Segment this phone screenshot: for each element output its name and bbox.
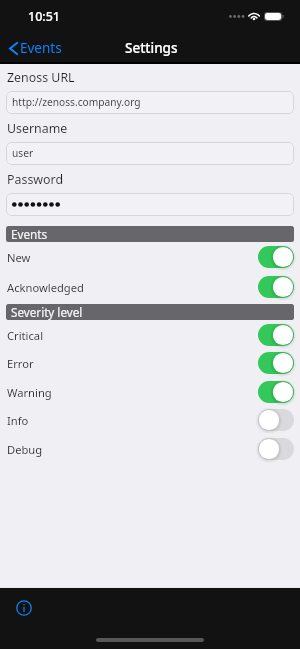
- button[interactable]: Events: [0, 34, 70, 62]
- staticText: Acknowledged: [7, 280, 84, 295]
- staticText: Warning: [7, 385, 52, 400]
- button[interactable]: [6, 193, 294, 216]
- staticText: Zenoss URL: [7, 69, 75, 86]
- staticText: Critical: [7, 328, 44, 343]
- button[interactable]: Debug: [0, 435, 300, 463]
- button[interactable]: Error: [0, 349, 300, 377]
- staticText: Settings: [125, 39, 178, 57]
- staticText: Error: [7, 356, 34, 371]
- button[interactable]: New: [0, 243, 300, 271]
- button[interactable]: Info: [16, 600, 32, 616]
- staticText: Severity level: [11, 304, 83, 320]
- button[interactable]: http://zenoss.company.org: [6, 91, 294, 114]
- button[interactable]: user: [6, 142, 294, 165]
- staticText: user: [12, 146, 34, 160]
- staticText: 10:51: [28, 8, 61, 25]
- button[interactable]: Acknowledged: [0, 273, 300, 301]
- staticText: Events: [11, 226, 48, 242]
- staticText: Events: [20, 39, 62, 57]
- staticText: New: [7, 250, 31, 265]
- button[interactable]: Info: [0, 406, 300, 434]
- staticText: Debug: [7, 442, 43, 457]
- staticText: http://zenoss.company.org: [12, 95, 141, 109]
- button[interactable]: Critical: [0, 321, 300, 349]
- button[interactable]: Warning: [0, 378, 300, 406]
- staticText: Info: [7, 413, 29, 428]
- staticText: Password: [7, 171, 64, 188]
- staticText: Username: [7, 120, 68, 137]
